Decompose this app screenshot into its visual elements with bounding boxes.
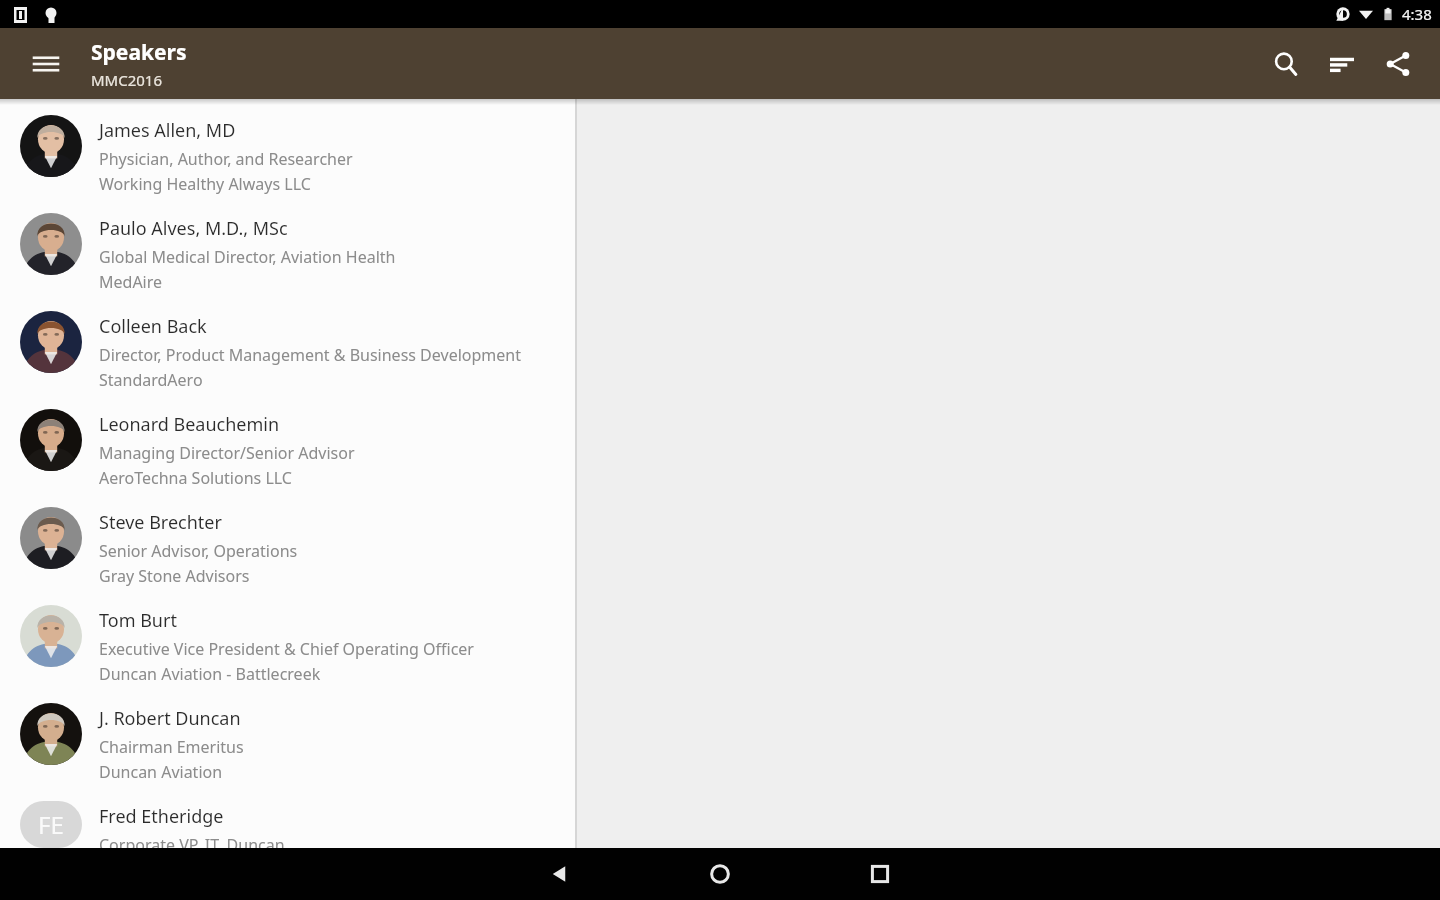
staticText: Physician, Author, and Researcher: [99, 148, 353, 170]
button[interactable]: J. Robert Duncan: [0, 698, 575, 796]
staticText: Working Healthy Always LLC: [99, 173, 311, 195]
staticText: Fred Etheridge: [99, 804, 224, 829]
staticText: Steve Brechter: [99, 510, 222, 535]
button[interactable]: Tom Burt: [0, 600, 575, 698]
staticText: Paulo Alves, M.D., MSc: [99, 216, 288, 241]
button[interactable]: Recent apps: [800, 848, 960, 900]
staticText: AeroTechna Solutions LLC: [99, 467, 292, 489]
staticText: FE: [38, 808, 64, 841]
button[interactable]: FE: [0, 796, 575, 848]
staticText: Director, Product Management & Business …: [99, 344, 521, 366]
staticText: Speakers: [91, 38, 187, 67]
staticText: Senior Advisor, Operations: [99, 540, 298, 562]
button[interactable]: Paulo Alves, M.D., MSc: [0, 208, 575, 306]
button[interactable]: Colleen Back: [0, 306, 575, 404]
button[interactable]: Sort: [1314, 36, 1370, 92]
button[interactable]: Share: [1370, 36, 1426, 92]
staticText: Managing Director/Senior Advisor: [99, 442, 355, 464]
button[interactable]: Steve Brechter: [0, 502, 575, 600]
staticText: Executive Vice President & Chief Operati…: [99, 638, 474, 660]
button[interactable]: James Allen, MD: [0, 110, 575, 208]
button[interactable]: Leonard Beauchemin: [0, 404, 575, 502]
staticText: Global Medical Director, Aviation Health: [99, 246, 396, 268]
button[interactable]: Search: [1258, 36, 1314, 92]
staticText: Chairman Emeritus: [99, 736, 244, 758]
staticText: J. Robert Duncan: [99, 706, 241, 731]
staticText: StandardAero: [99, 369, 203, 391]
staticText: MMC2016: [91, 70, 163, 90]
staticText: Corporate VP, IT, Duncan: [99, 834, 285, 848]
staticText: 4:38: [1402, 4, 1432, 24]
staticText: Duncan Aviation: [99, 761, 223, 783]
staticText: Duncan Aviation - Battlecreek: [99, 663, 321, 685]
button[interactable]: Open navigation menu: [20, 38, 72, 90]
staticText: Tom Burt: [99, 608, 177, 633]
staticText: Gray Stone Advisors: [99, 565, 250, 587]
staticText: James Allen, MD: [99, 118, 236, 143]
staticText: Colleen Back: [99, 314, 207, 339]
staticText: Leonard Beauchemin: [99, 412, 280, 437]
staticText: MedAire: [99, 271, 163, 293]
button[interactable]: Back: [480, 848, 640, 900]
button[interactable]: Home: [640, 848, 800, 900]
